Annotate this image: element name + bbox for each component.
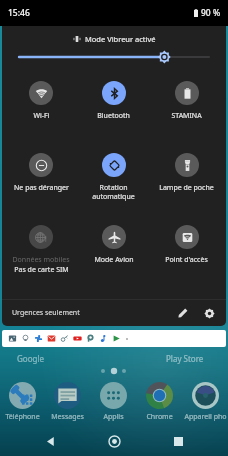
staticText: Chrome [146,412,173,422]
button[interactable]: Chrome [136,379,182,424]
button[interactable]: Back [38,428,64,454]
button[interactable]: Settings [200,304,218,322]
button[interactable]: Applis [90,379,136,424]
button[interactable]: Appareil pho [182,379,228,424]
staticText: Google [17,353,44,364]
button[interactable]: Mode Avion [77,216,150,288]
button[interactable]: STAMINA [150,72,223,144]
staticText: Données mobiles [12,255,70,265]
staticText: Lampe de poche [159,183,214,193]
button[interactable]: Rotation automatique [77,144,150,216]
button[interactable]: Données mobiles [5,216,77,288]
staticText: Messages [51,412,84,422]
staticText: Wi-Fi [33,111,50,121]
staticText: Rotation automatique [92,183,135,201]
staticText: 15:46 [8,7,30,19]
staticText: 90 % [201,7,221,19]
button[interactable]: Bluetooth [77,72,150,144]
staticText: Urgences seulement [12,308,80,318]
staticText: STAMINA [171,111,202,121]
button[interactable]: Home [101,428,127,454]
button[interactable]: Recents [165,428,191,454]
button[interactable]: Téléphone [0,379,45,424]
staticText: Mode Avion [94,255,134,265]
staticText: Applis [103,412,124,422]
button[interactable]: Messages [45,379,90,424]
button[interactable]: Point d'accès [150,216,223,288]
staticText: Appareil pho [184,412,227,422]
button[interactable]: Edit [174,304,192,322]
staticText: Pas de carte SIM [14,265,69,275]
button[interactable]: Lampe de poche [150,144,223,216]
staticText: Play Store [166,353,204,364]
button[interactable]: Ne pas déranger [5,144,77,216]
staticText: Téléphone [5,412,40,422]
button[interactable]: Wi-Fi [5,72,77,144]
staticText: Ne pas déranger [14,183,69,193]
staticText: Bluetooth [97,111,130,121]
staticText: Point d'accès [165,255,208,265]
staticText: Mode Vibreur activé [85,34,156,44]
